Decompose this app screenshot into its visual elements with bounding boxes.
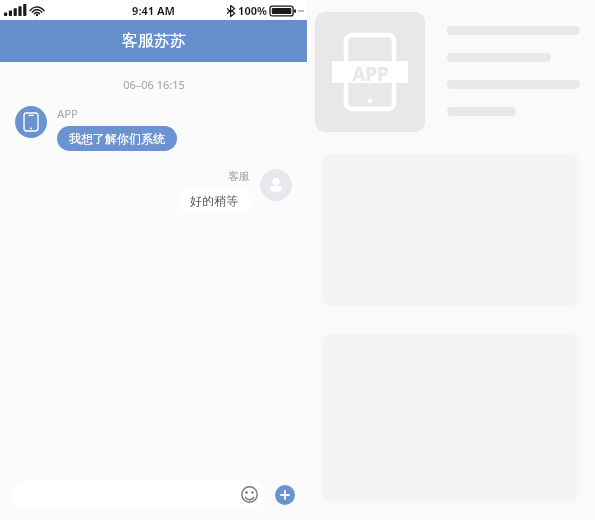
button[interactable]: Emoji — [12, 481, 264, 508]
button[interactable]: APP avatar — [15, 106, 47, 138]
staticText: 9:41 AM — [132, 3, 175, 18]
button[interactable]: APP — [315, 12, 425, 132]
button[interactable]: 好的稍等 — [178, 188, 250, 213]
staticText: 我想了解你们系统 — [69, 131, 165, 146]
staticText: 好的稍等 — [190, 193, 238, 208]
staticText: 客服 — [228, 169, 250, 183]
staticText: APP — [57, 106, 78, 121]
staticText: 06–06 16:15 — [123, 77, 185, 92]
button[interactable]: Agent avatar — [260, 169, 292, 201]
button[interactable]: 我想了解你们系统 — [57, 126, 177, 151]
button[interactable]: Add — [275, 485, 295, 505]
staticText: 100% — [238, 3, 267, 18]
button[interactable]: Emoji — [241, 486, 258, 503]
staticText: APP — [352, 61, 389, 83]
staticText: 客服苏苏 — [122, 31, 186, 51]
button[interactable]: 客服苏苏 — [0, 20, 307, 62]
